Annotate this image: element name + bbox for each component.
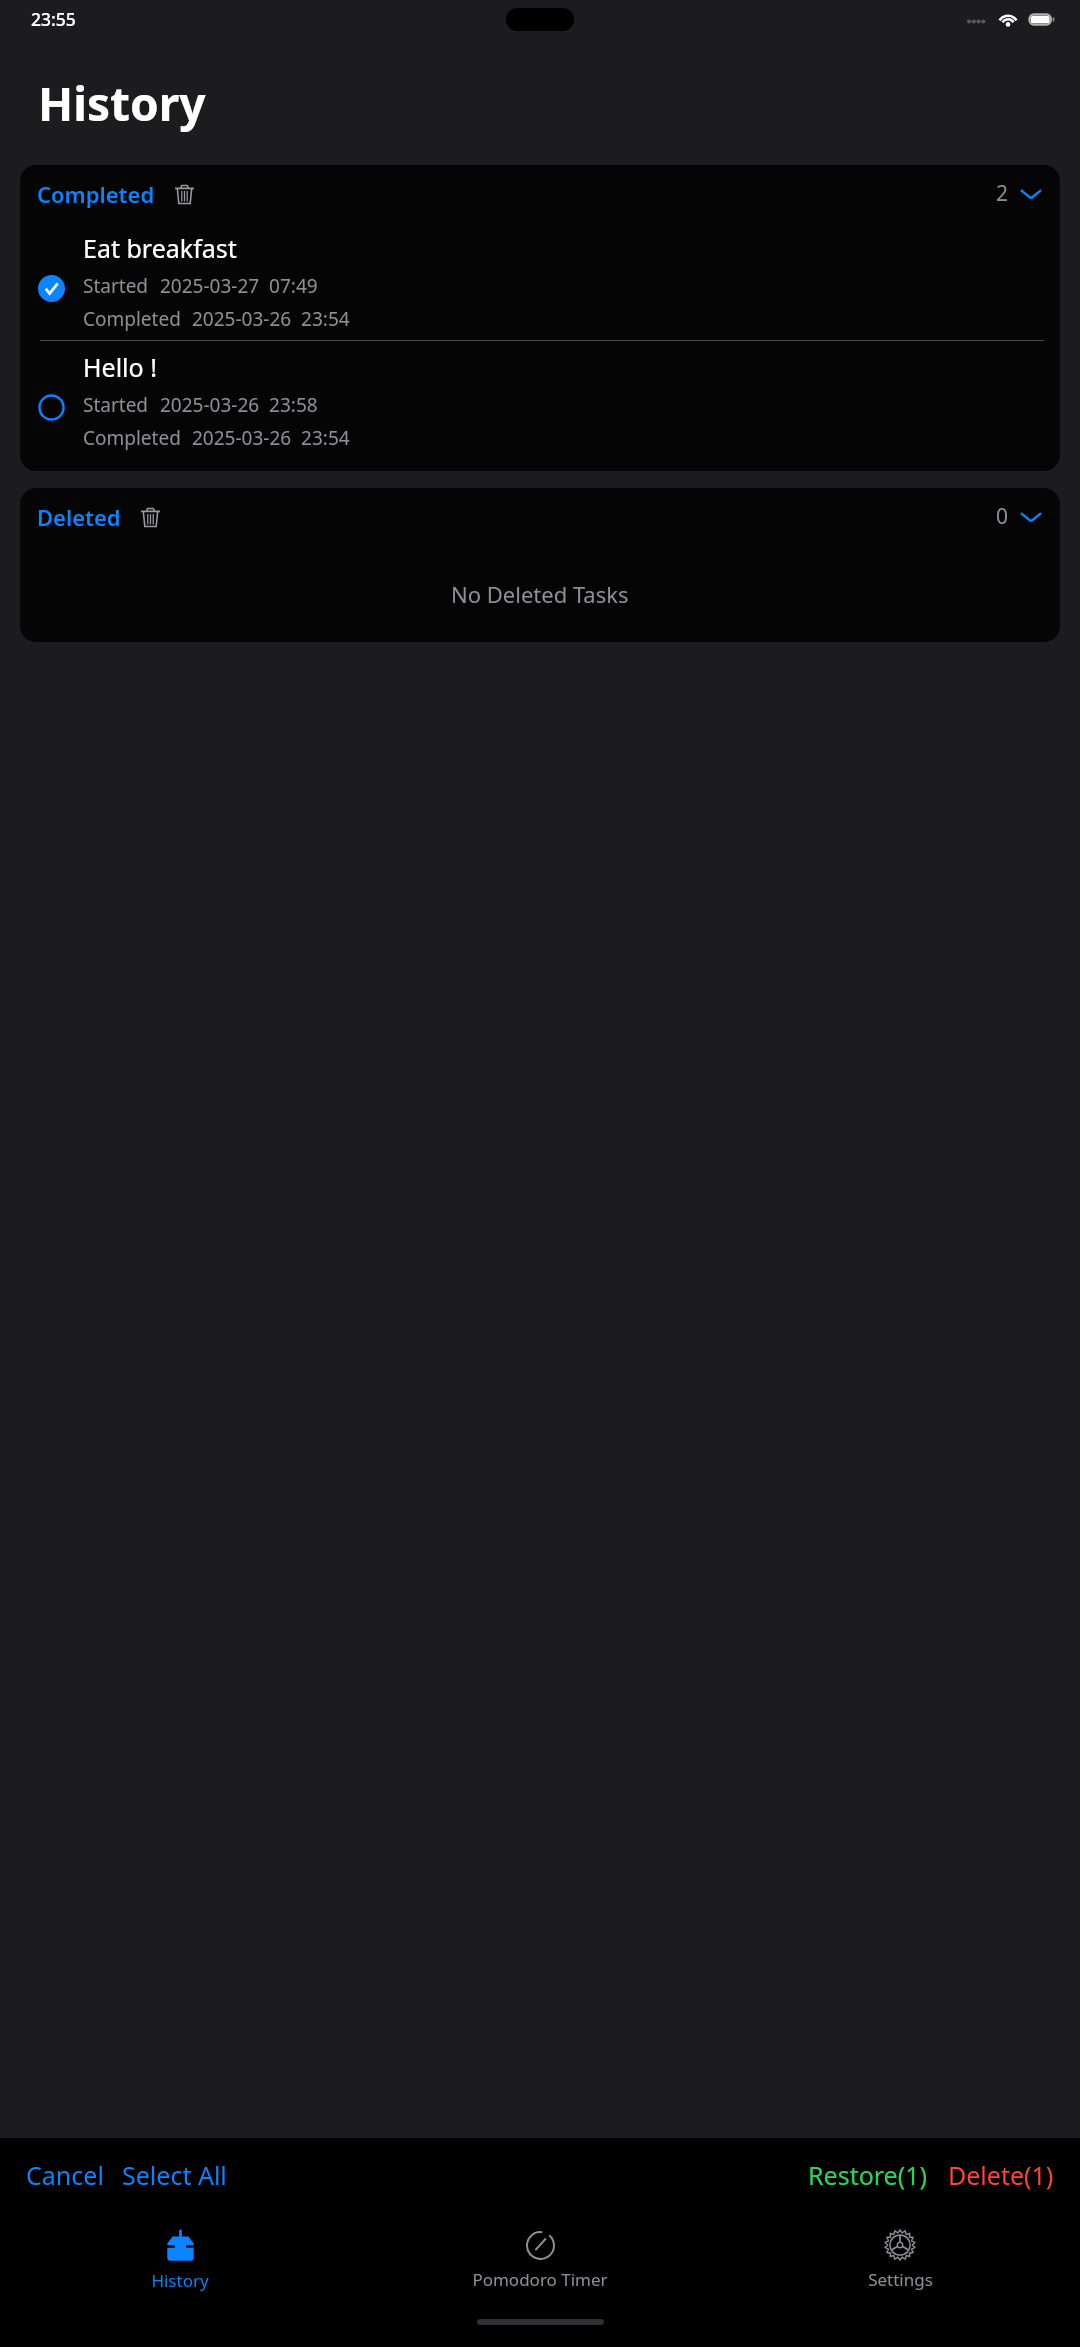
button[interactable]: Cancel	[20, 2152, 110, 2198]
staticText: Completed	[83, 425, 181, 451]
button[interactable]: Delete(1)	[942, 2152, 1060, 2198]
staticText: No Deleted Tasks	[451, 579, 629, 609]
button[interactable]: Unselected task	[37, 393, 65, 421]
button[interactable]: Collapse Completed	[996, 179, 1043, 208]
staticText: 2025-03-26 23:58	[160, 392, 318, 418]
button[interactable]: Selected task	[37, 274, 65, 302]
button[interactable]: Pomodoro Timer	[360, 2224, 720, 2297]
staticText: 2	[996, 179, 1009, 208]
button[interactable]: Collapse Deleted	[996, 502, 1043, 531]
button[interactable]: Settings	[720, 2223, 1080, 2297]
button[interactable]: Delete all in Completed	[169, 179, 199, 209]
staticText: Hello !	[83, 350, 157, 384]
button[interactable]: Unselected task	[20, 341, 1060, 459]
button[interactable]: Completed	[37, 179, 155, 209]
staticText: Eat breakfast	[83, 231, 237, 265]
staticText: History	[151, 2269, 209, 2292]
button[interactable]: Select All	[116, 2152, 233, 2198]
staticText: 2025-03-27 07:49	[160, 273, 318, 299]
staticText: Pomodoro Timer	[472, 2268, 608, 2291]
button[interactable]: Selected task	[20, 222, 1060, 340]
staticText: Settings	[868, 2268, 933, 2291]
staticText: 23:55	[31, 7, 76, 31]
staticText: 2025-03-26 23:54	[192, 306, 350, 332]
staticText: 2025-03-26 23:54	[192, 425, 350, 451]
staticText: History	[38, 72, 206, 135]
button[interactable]: Deleted	[37, 502, 121, 532]
staticText: Started	[83, 392, 149, 418]
button[interactable]: History	[0, 2223, 360, 2298]
button[interactable]: Delete all in Deleted	[135, 502, 165, 532]
staticText: Started	[83, 273, 149, 299]
staticText: 0	[996, 502, 1009, 531]
button[interactable]: Restore(1)	[802, 2152, 934, 2198]
staticText: Completed	[83, 306, 181, 332]
